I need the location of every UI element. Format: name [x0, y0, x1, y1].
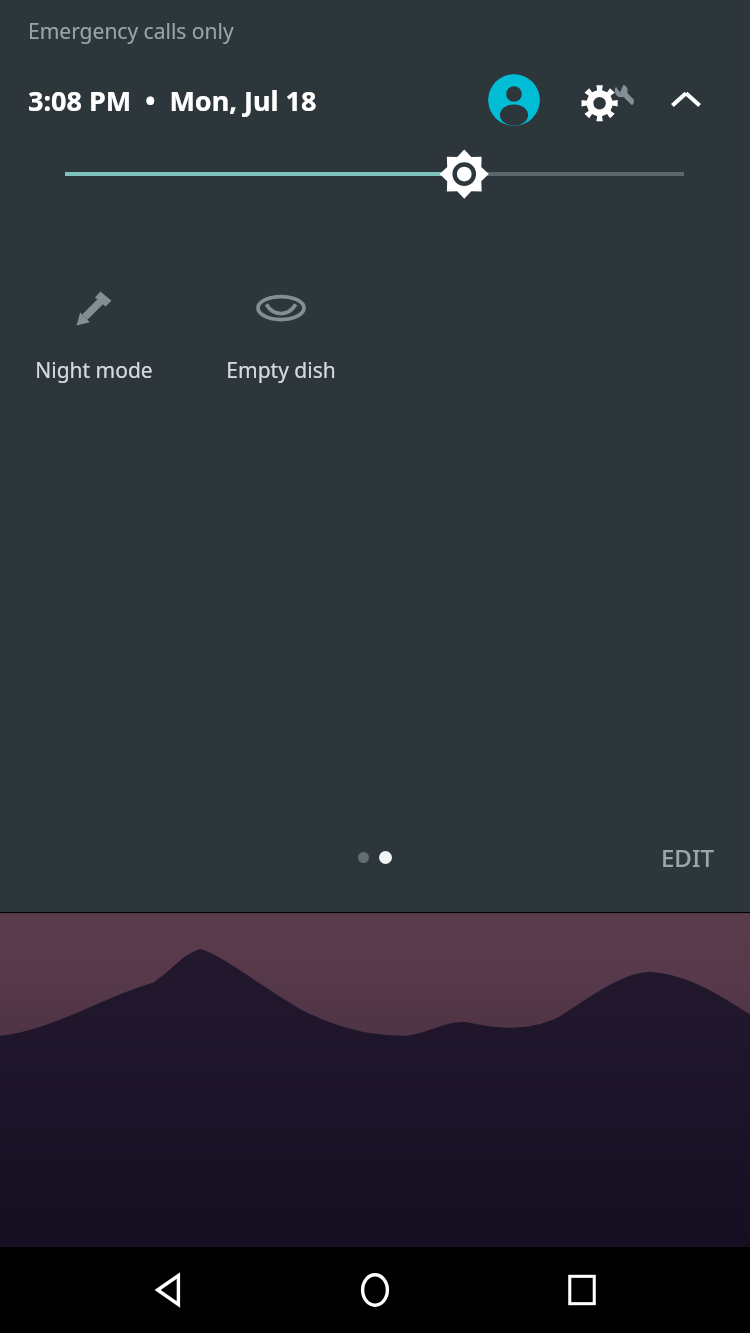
staticText: 3:08 PM • Mon, Jul 18	[28, 82, 317, 119]
button[interactable]: Back	[129, 1251, 207, 1329]
button[interactable]: User account	[488, 74, 540, 126]
button[interactable]: EDIT	[647, 831, 728, 884]
staticText: Emergency calls only	[28, 17, 234, 46]
button[interactable]: Night mode	[0, 266, 187, 385]
staticText: EDIT	[661, 841, 714, 874]
staticText: Empty dish	[226, 356, 336, 385]
button[interactable]: Collapse	[660, 74, 712, 126]
staticText: Night mode	[35, 356, 153, 385]
button[interactable]: Home	[336, 1251, 414, 1329]
button[interactable]: Settings	[576, 71, 634, 129]
button[interactable]: Brightness	[0, 138, 750, 220]
button[interactable]: Empty dish	[187, 266, 374, 385]
button[interactable]: Recent apps	[543, 1251, 621, 1329]
